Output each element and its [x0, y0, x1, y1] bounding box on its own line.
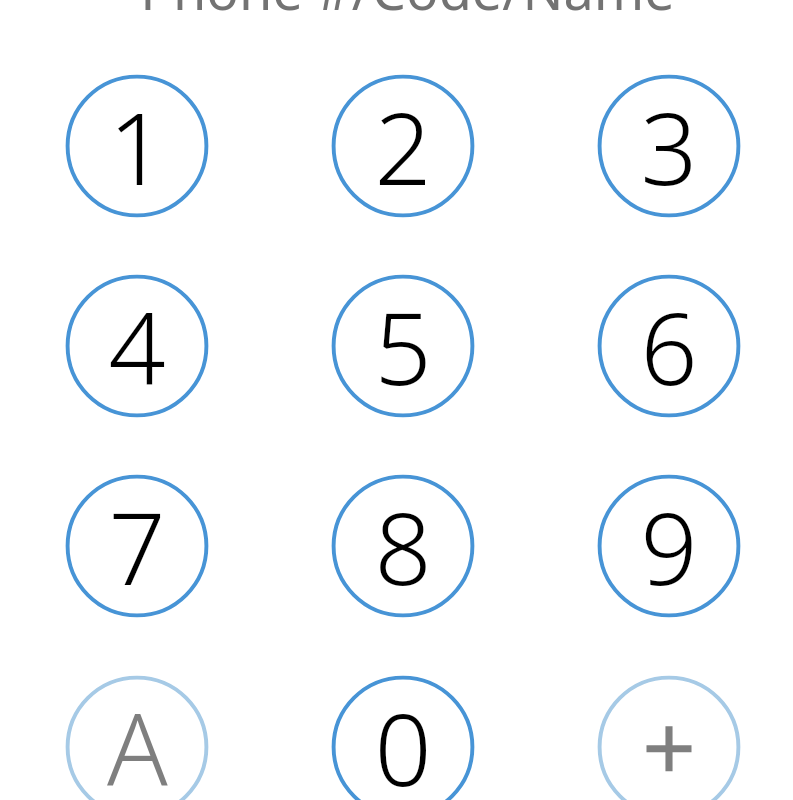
button[interactable]: 2 [329, 72, 477, 220]
button[interactable]: 7 [63, 472, 211, 620]
staticText: 7 [108, 478, 166, 614]
staticText: A [107, 679, 168, 800]
button[interactable]: 4 [63, 272, 211, 420]
staticText: 9 [640, 478, 698, 614]
staticText: 0 [374, 679, 432, 800]
button[interactable]: Switch to letters [63, 673, 211, 800]
staticText: 1 [108, 78, 166, 214]
button[interactable]: 6 [595, 272, 743, 420]
button[interactable]: 9 [595, 472, 743, 620]
staticText: 3 [640, 78, 698, 214]
staticText: 4 [108, 278, 166, 414]
button[interactable]: Plus [595, 673, 743, 800]
staticText: Phone #/Code/Name [140, 0, 675, 26]
button[interactable]: 5 [329, 272, 477, 420]
button[interactable]: 3 [595, 72, 743, 220]
staticText: 6 [640, 278, 698, 414]
staticText: 5 [374, 278, 432, 414]
button[interactable]: 1 [63, 72, 211, 220]
staticText: 8 [374, 478, 432, 614]
button[interactable]: 8 [329, 472, 477, 620]
staticText: 2 [374, 78, 432, 214]
button[interactable]: 0 [329, 673, 477, 800]
